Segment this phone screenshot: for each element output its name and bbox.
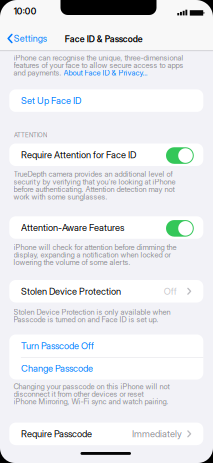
staticText: Settings [14, 33, 47, 44]
staticText: Face ID & Passcode [65, 34, 143, 44]
staticText: display, expanding a notification when l… [13, 250, 170, 259]
staticText: iPhone will check for attention before d… [13, 243, 176, 252]
staticText: Immediately [132, 428, 182, 439]
staticText: disconnect it from other devices or rese… [13, 389, 143, 399]
staticText: TrueDepth camera provides an additional … [13, 169, 172, 179]
button[interactable]: Require Attention for Face ID [166, 147, 194, 164]
staticText: Changing your passcode on this iPhone wi… [13, 382, 169, 391]
button[interactable]: Require Passcode [9, 423, 203, 445]
staticText: Attention-Aware Features [21, 222, 124, 233]
staticText: iPhone Mirroring, Wi-Fi sync and watch p… [13, 397, 168, 406]
staticText: Require Attention for Face ID [21, 149, 136, 160]
staticText: Stolen Device Protection [21, 286, 121, 297]
button[interactable]: About Face ID & Privacy… [63, 68, 147, 77]
button[interactable]: Back [7, 33, 47, 44]
staticText: 10:00 [14, 6, 37, 17]
staticText: Change Passcode [21, 363, 93, 374]
staticText: About Face ID & Privacy… [63, 68, 147, 77]
button[interactable]: Set Up Face ID [9, 89, 203, 112]
staticText: Stolen Device Protection is only availab… [13, 307, 170, 316]
staticText: ATTENTION [14, 131, 47, 139]
staticText: Off [164, 286, 177, 297]
staticText: Passcode is turned on and Face ID is set… [13, 315, 158, 324]
button[interactable]: Attention-Aware Features [166, 220, 194, 237]
staticText: iPhone can recognise the unique, three-d… [13, 53, 183, 62]
staticText: lowering the volume of some alerts. [13, 258, 130, 267]
button[interactable]: Change Passcode [9, 357, 203, 379]
staticText: before authenticating. Attention detecti… [13, 185, 174, 194]
button[interactable]: Turn Passcode Off [9, 334, 203, 357]
staticText: Set Up Face ID [21, 95, 81, 106]
staticText: security by verifying that you're lookin… [13, 177, 175, 186]
staticText: work with some sunglasses. [13, 192, 107, 201]
staticText: and payments. [13, 68, 63, 77]
staticText: Turn Passcode Off [21, 340, 94, 351]
button[interactable]: Stolen Device Protection [9, 280, 203, 302]
staticText: Require Passcode [21, 428, 92, 439]
staticText: features of your face to allow secure ac… [13, 61, 183, 70]
